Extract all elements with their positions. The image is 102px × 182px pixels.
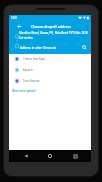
staticText: Want more options? (12, 89, 37, 93)
button[interactable]: Back (18, 150, 34, 162)
staticText: Address in other Demands (20, 46, 57, 50)
staticText: Choose from Map (23, 57, 45, 61)
button[interactable]: Choose from Map (9, 53, 91, 64)
button[interactable]: Train Stations (9, 75, 91, 86)
button[interactable]: Airports (9, 64, 91, 75)
staticText: Maaldan Road, Stavar, PR, Rich/Aved PV'S… (19, 31, 99, 40)
staticText: Choose dropoff address (31, 24, 71, 29)
button[interactable]: Back (14, 21, 24, 32)
button[interactable]: Home (42, 150, 58, 162)
button[interactable]: Want more options? (9, 86, 91, 96)
staticText: Train Stations (23, 79, 40, 83)
button[interactable]: Address in other Demands (9, 43, 91, 52)
staticText: Airports (23, 68, 33, 72)
button[interactable]: Recent apps (67, 150, 83, 162)
staticText: 5:00 (11, 16, 17, 20)
button[interactable]: Search (80, 43, 89, 52)
